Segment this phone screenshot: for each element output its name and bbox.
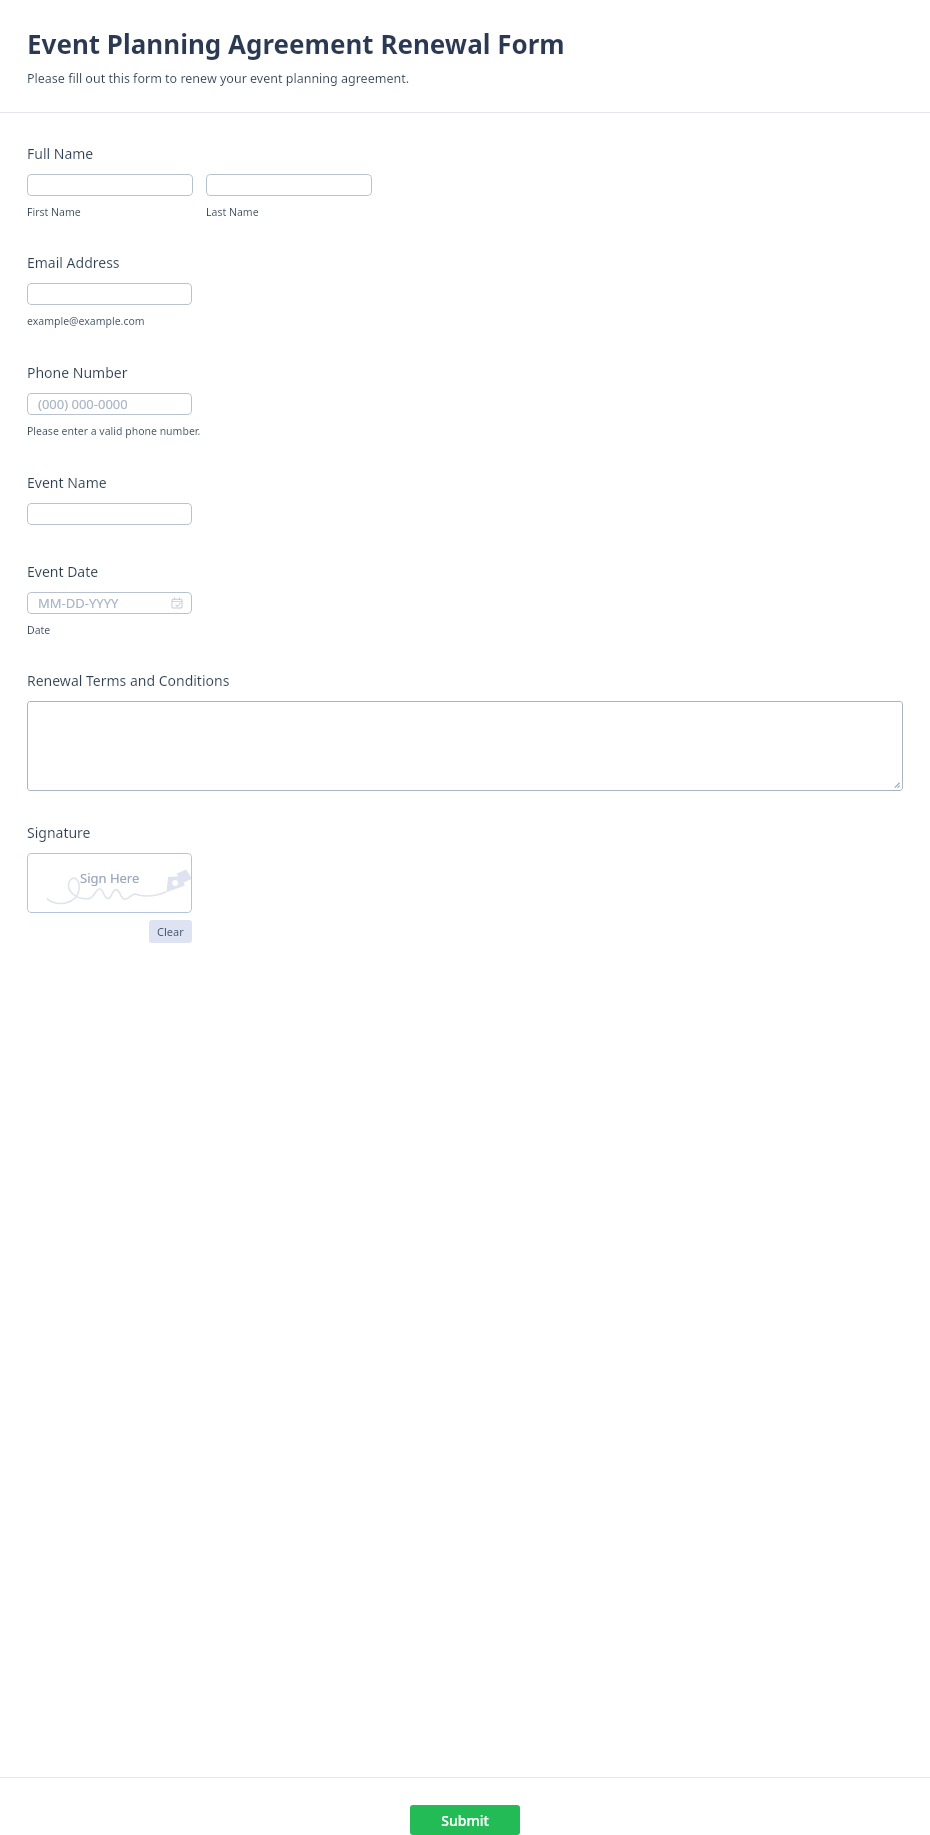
staticText: MM-DD-YYYY <box>38 594 119 612</box>
button[interactable]: Event date picker <box>27 592 192 614</box>
staticText: Clear <box>157 924 184 939</box>
staticText: Please fill out this form to renew your … <box>27 70 410 87</box>
staticText: Sign Here <box>80 869 140 887</box>
staticText: First Name <box>27 205 81 219</box>
button[interactable] <box>27 503 192 525</box>
staticText: Event Planning Agreement Renewal Form <box>27 26 565 61</box>
staticText: Signature <box>27 823 91 842</box>
button[interactable]: (000) 000-0000 <box>27 393 192 415</box>
staticText: Last Name <box>206 205 259 219</box>
button[interactable]: Submit <box>410 1805 520 1835</box>
staticText: Email Address <box>27 253 120 272</box>
button[interactable]: Signature pad, sign here <box>27 853 192 913</box>
staticText: (000) 000-0000 <box>38 395 128 413</box>
staticText: Event Date <box>27 562 99 581</box>
button[interactable] <box>27 174 193 196</box>
staticText: Submit <box>441 1811 489 1830</box>
staticText: Renewal Terms and Conditions <box>27 671 230 690</box>
button[interactable] <box>206 174 372 196</box>
staticText: example@example.com <box>27 314 145 328</box>
button[interactable]: Clear <box>149 920 192 943</box>
button[interactable] <box>27 701 903 791</box>
staticText: Date <box>27 623 51 637</box>
staticText: Event Name <box>27 473 107 492</box>
staticText: Please enter a valid phone number. <box>27 424 201 438</box>
button[interactable] <box>27 283 192 305</box>
staticText: Full Name <box>27 144 94 163</box>
staticText: Phone Number <box>27 363 128 382</box>
